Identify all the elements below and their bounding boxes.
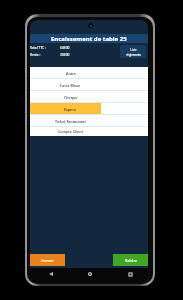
staticText: Ticket Restaurant [55,119,86,124]
button[interactable]: Fermer [30,254,65,266]
staticText: Total TTC : [30,45,46,49]
staticText: Autre [66,71,76,76]
staticText: Compte Client [58,129,83,134]
staticText: Reste : [30,52,41,56]
button[interactable]: Back [45,268,57,280]
button[interactable]: Espece [30,103,148,115]
button[interactable]: Recent apps [124,268,136,280]
staticText: Liste règlements [126,48,141,56]
button[interactable]: Valider [113,254,148,266]
button[interactable]: Cheque [30,91,148,103]
staticText: Carte Bleue [60,83,81,88]
button[interactable]: Carte Bleue [30,79,148,91]
staticText: Valider [125,258,137,263]
button[interactable]: Home [84,268,96,280]
button[interactable]: Ticket Restaurant [30,115,148,127]
staticText: Espece [64,107,77,112]
staticText: 30€00 [60,52,70,56]
staticText: Cheque [64,95,78,100]
button[interactable]: Autre [30,67,148,79]
button[interactable]: Liste règlements [120,45,146,58]
button[interactable]: Compte Client [30,127,148,136]
staticText: Encaissement de table 25 [51,35,127,43]
staticText: 64€00 [60,45,70,49]
staticText: Fermer [41,258,54,263]
